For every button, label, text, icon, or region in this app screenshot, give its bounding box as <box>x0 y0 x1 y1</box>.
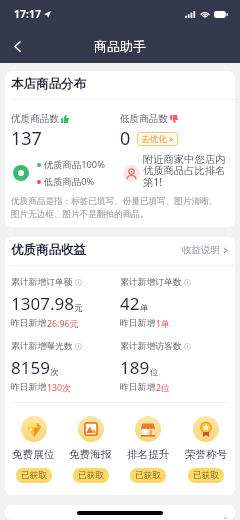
staticText: 累计新增订单额 <box>11 277 73 288</box>
staticText: 元 <box>74 303 83 314</box>
staticText: 去优化 » <box>141 133 174 145</box>
staticText: 已获取 <box>193 470 219 481</box>
staticText: 已获取 <box>78 470 104 481</box>
staticText: 0 <box>120 126 131 151</box>
staticText: 17:17 <box>14 7 41 21</box>
staticText: 2位 <box>156 382 170 394</box>
staticText: 优质商品收益 <box>11 242 86 258</box>
staticText: 昨日新增 <box>11 318 47 329</box>
staticText: 130次 <box>47 382 71 394</box>
staticText: 荣誉称号 <box>185 448 228 461</box>
staticText: 优质商品100% <box>44 158 105 171</box>
staticText: 42 <box>120 292 140 315</box>
staticText: 优质商品数 <box>11 113 59 125</box>
staticText: 附近商家中您店内优质商品占比排名第1! <box>143 153 235 189</box>
staticText: 8159 <box>11 356 50 379</box>
staticText: 已获取 <box>21 470 47 481</box>
button[interactable]: 荣誉称号 <box>177 416 235 483</box>
staticText: 排名提升 <box>127 448 170 461</box>
staticText: 昨日新增 <box>11 382 47 393</box>
staticText: 低质商品0% <box>44 175 95 188</box>
staticText: 累计新增曝光数 <box>11 341 73 352</box>
staticText: 商品助手 <box>94 38 146 54</box>
staticText: 昨日新增 <box>120 382 156 393</box>
staticText: 1307.98 <box>11 292 74 315</box>
staticText: 低质商品数 <box>120 113 168 125</box>
staticText: 次 <box>50 367 59 378</box>
button[interactable]: Back <box>0 29 34 63</box>
staticText: 189 <box>120 356 150 379</box>
staticText: 单 <box>140 303 149 314</box>
staticText: 图片无边框、图片不是翻拍的商品。 <box>11 209 149 220</box>
staticText: 累计新增订单数 <box>120 277 182 288</box>
staticText: 收益说明 <box>182 244 220 256</box>
staticText: 本店商品分布 <box>11 76 86 92</box>
staticText: 26.96元 <box>47 318 79 330</box>
staticText: 免费海报 <box>69 448 112 461</box>
staticText: 已获取 <box>135 470 161 481</box>
staticText: 1单 <box>156 318 170 330</box>
staticText: 昨日新增 <box>120 318 156 329</box>
button[interactable]: 去优化 » <box>137 132 178 146</box>
button[interactable]: 收益说明 <box>182 244 229 256</box>
button[interactable]: 排名提升 <box>119 416 177 483</box>
staticText: 免费展位 <box>12 448 55 461</box>
staticText: 137 <box>11 126 42 151</box>
staticText: 累计新增访客数 <box>120 341 182 352</box>
button[interactable]: 免费展位 <box>5 416 62 483</box>
button[interactable]: 免费海报 <box>62 416 119 483</box>
staticText: 优质商品是指：标签已填写、份量已填写、图片清晰、 <box>11 196 218 207</box>
staticText: 位 <box>150 367 159 378</box>
